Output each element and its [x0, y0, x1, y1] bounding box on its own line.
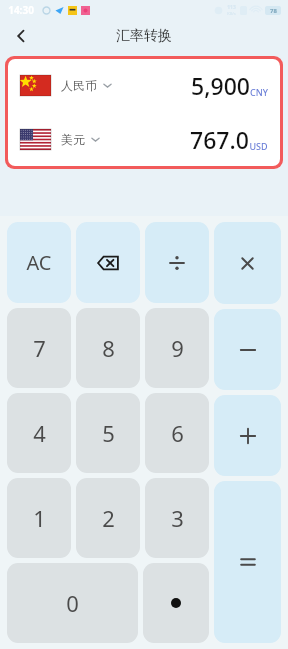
staticText: 6 [171, 418, 184, 448]
button[interactable] [214, 481, 281, 643]
button[interactable]: 3 [145, 478, 209, 558]
staticText: 3 [171, 503, 184, 533]
button[interactable] [214, 222, 281, 304]
staticText: 1 [33, 503, 46, 533]
staticText: 5 [102, 418, 115, 448]
button[interactable]: 2 [76, 478, 140, 558]
button[interactable]: 9 [145, 308, 209, 388]
button[interactable]: 1 [7, 478, 71, 558]
staticText: CNY [250, 86, 268, 98]
staticText: 5,900 [191, 70, 250, 101]
staticText: 美元 [61, 132, 85, 147]
staticText: 78 [270, 7, 277, 15]
button[interactable] [214, 309, 281, 390]
button[interactable]: AC [7, 222, 71, 303]
button[interactable]: 0 [7, 563, 138, 643]
button[interactable]: 人民币 [8, 59, 280, 112]
staticText: 9 [171, 333, 184, 363]
button[interactable] [214, 395, 281, 476]
staticText: 人民币 [61, 78, 97, 93]
staticText: USD [249, 140, 268, 152]
staticText: 0 [66, 588, 79, 618]
button[interactable]: 美元 [8, 112, 280, 166]
staticText: 767.0 [190, 124, 249, 155]
button[interactable]: 5 [76, 393, 140, 473]
button[interactable]: Backspace [76, 222, 140, 303]
staticText: AC [26, 249, 52, 276]
staticText: 7 [33, 333, 46, 363]
button[interactable]: 7 [7, 308, 71, 388]
button[interactable]: 8 [76, 308, 140, 388]
button[interactable] [145, 222, 209, 303]
button[interactable]: Back [6, 21, 36, 51]
staticText: 14:30 [8, 3, 34, 17]
staticText: KB/s [227, 11, 236, 16]
staticText: 4 [33, 418, 46, 448]
button[interactable] [143, 563, 209, 643]
staticText: 8 [102, 333, 115, 363]
staticText: 2 [102, 503, 115, 533]
button[interactable]: 4 [7, 393, 71, 473]
staticText: 汇率转换 [116, 27, 172, 45]
staticText: 113 [227, 4, 236, 11]
button[interactable]: 6 [145, 393, 209, 473]
